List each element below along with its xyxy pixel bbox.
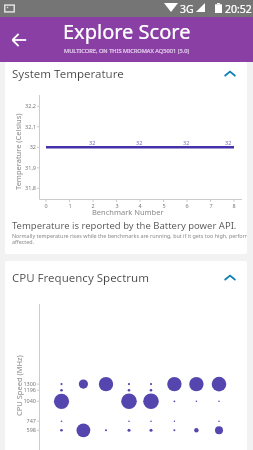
- staticText: 32: [89, 139, 96, 146]
- staticText: affected.: [12, 238, 35, 245]
- staticText: 1300: [7, 380, 36, 387]
- staticText: 31,9: [11, 164, 36, 171]
- staticText: 32,1: [11, 123, 36, 130]
- staticText: 8: [228, 202, 240, 209]
- other: Collapse: [224, 272, 236, 284]
- other: Collapse: [224, 68, 236, 80]
- staticText: Explore Score: [63, 18, 191, 45]
- staticText: 0: [40, 202, 52, 209]
- staticText: 32: [11, 143, 36, 150]
- staticText: 3G: [180, 2, 194, 16]
- staticText: 32: [225, 139, 232, 146]
- staticText: 32,2: [11, 102, 36, 109]
- staticText: 4: [134, 202, 146, 209]
- staticText: 7: [205, 202, 217, 209]
- staticText: Temperature is reported by the Battery p…: [12, 219, 237, 232]
- staticText: 5: [158, 202, 170, 209]
- button[interactable]: Back: [0, 21, 38, 59]
- staticText: 31,8: [11, 184, 36, 191]
- staticText: 598: [7, 426, 36, 433]
- staticText: System Temperature: [12, 66, 124, 82]
- staticText: CPU Frequency Spectrum: [12, 270, 149, 286]
- staticText: 2: [87, 202, 99, 209]
- staticText: 32: [136, 139, 143, 146]
- staticText: MULTICORE, ON THIS MICROMAX AQ5001 (5.0): [64, 47, 190, 55]
- staticText: CPU Speed (MHz): [14, 355, 24, 416]
- button[interactable]: System Temperature: [5, 62, 247, 86]
- staticText: 20:52: [225, 2, 252, 16]
- staticText: Benchmark Number: [92, 207, 164, 217]
- staticText: 1196: [7, 386, 36, 393]
- staticText: 6: [181, 202, 193, 209]
- staticText: 32: [183, 139, 190, 146]
- staticText: 3: [111, 202, 123, 209]
- staticText: 747: [7, 417, 36, 424]
- staticText: 1: [64, 202, 76, 209]
- staticText: Normally temperature rises while the ben…: [12, 232, 247, 239]
- button[interactable]: CPU Frequency Spectrum: [5, 261, 247, 295]
- staticText: Temperature (Celsius): [13, 113, 23, 190]
- staticText: 1040: [7, 397, 36, 404]
